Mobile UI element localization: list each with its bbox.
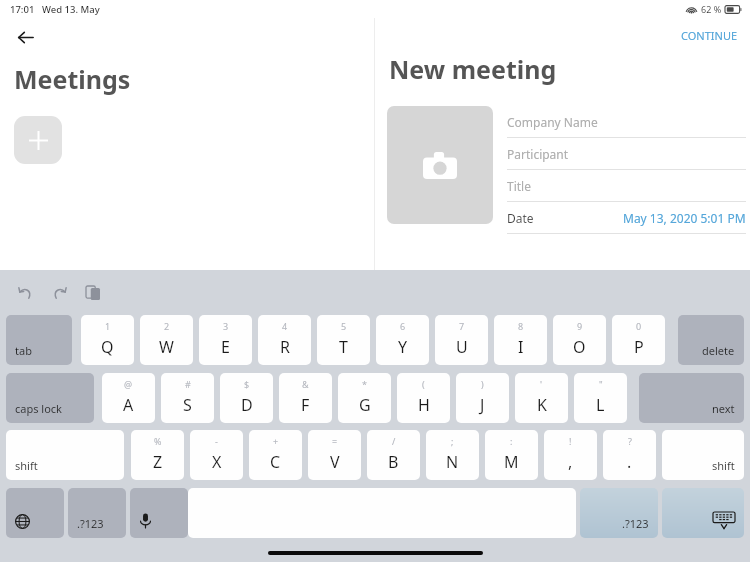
staticText: , xyxy=(568,451,573,473)
button[interactable]: ( xyxy=(397,373,450,423)
staticText: * xyxy=(362,378,367,390)
button[interactable]: $ xyxy=(220,373,273,423)
button[interactable]: 3 xyxy=(199,315,252,365)
staticText: F xyxy=(301,394,310,416)
button[interactable]: Change language xyxy=(6,488,64,538)
button[interactable]: 4 xyxy=(258,315,311,365)
button[interactable]: shift xyxy=(662,430,744,480)
staticText: + xyxy=(273,435,279,447)
button[interactable]: Voice input xyxy=(130,488,188,538)
staticText: Z xyxy=(153,451,163,473)
button[interactable]: " xyxy=(574,373,627,423)
staticText: shift xyxy=(712,458,735,473)
button[interactable]: Add meeting xyxy=(14,116,62,164)
button[interactable]: / xyxy=(367,430,420,480)
staticText: / xyxy=(392,435,396,447)
button[interactable]: Participant xyxy=(507,138,746,169)
button[interactable]: Title xyxy=(507,170,746,201)
button[interactable]: 5 xyxy=(317,315,370,365)
button[interactable]: Date xyxy=(507,202,746,233)
staticText: - xyxy=(215,435,218,447)
button[interactable]: 6 xyxy=(376,315,429,365)
staticText: next xyxy=(712,401,735,416)
button[interactable]: Back xyxy=(6,18,44,56)
button[interactable]: % xyxy=(131,430,184,480)
staticText: : xyxy=(510,435,513,447)
staticText: 3 xyxy=(223,320,229,332)
staticText: Q xyxy=(101,336,114,358)
button[interactable]: Add photo xyxy=(387,106,493,224)
staticText: . xyxy=(627,451,632,473)
staticText: 6 xyxy=(400,320,406,332)
staticText: V xyxy=(330,451,340,473)
staticText: W xyxy=(159,336,174,358)
button[interactable]: * xyxy=(338,373,391,423)
staticText: CONTINUE xyxy=(681,28,738,43)
staticText: ! xyxy=(569,435,572,447)
button[interactable]: & xyxy=(279,373,332,423)
staticText: 17:01 xyxy=(10,3,35,16)
staticText: ) xyxy=(481,378,484,390)
staticText: 9 xyxy=(577,320,583,332)
button[interactable]: Paste xyxy=(80,280,106,306)
staticText: S xyxy=(183,394,192,416)
button[interactable]: caps lock xyxy=(6,373,94,423)
button[interactable]: : xyxy=(485,430,538,480)
button[interactable]: delete xyxy=(678,315,744,365)
staticText: @ xyxy=(124,378,133,390)
button[interactable]: CONTINUE xyxy=(675,23,744,48)
button[interactable]: .?123 xyxy=(580,488,658,538)
staticText: T xyxy=(339,336,348,358)
staticText: ' xyxy=(540,378,543,390)
staticText: Date xyxy=(507,210,534,226)
button[interactable]: Company Name xyxy=(507,106,746,137)
button[interactable]: ; xyxy=(426,430,479,480)
staticText: # xyxy=(185,378,191,390)
button[interactable]: Hide keyboard xyxy=(662,488,744,538)
staticText: .?123 xyxy=(622,516,649,531)
staticText: ; xyxy=(451,435,454,447)
staticText: Title xyxy=(507,178,531,194)
button[interactable]: @ xyxy=(102,373,155,423)
button[interactable]: ? xyxy=(603,430,656,480)
button[interactable]: 9 xyxy=(553,315,606,365)
staticText: = xyxy=(332,435,338,447)
staticText: 5 xyxy=(341,320,347,332)
staticText: J xyxy=(480,394,485,416)
button[interactable]: = xyxy=(308,430,361,480)
staticText: D xyxy=(241,394,253,416)
button[interactable]: # xyxy=(161,373,214,423)
button[interactable]: 1 xyxy=(81,315,134,365)
staticText: " xyxy=(599,378,603,390)
staticText: May 13, 2020 5:01 PM xyxy=(623,210,746,226)
staticText: P xyxy=(634,336,644,358)
button[interactable]: tab xyxy=(6,315,72,365)
button[interactable]: Undo xyxy=(12,280,38,306)
staticText: X xyxy=(212,451,222,473)
staticText: Wed 13. May xyxy=(42,3,100,16)
staticText: .?123 xyxy=(77,516,104,531)
button[interactable]: ! xyxy=(544,430,597,480)
button[interactable]: ' xyxy=(515,373,568,423)
button[interactable]: next xyxy=(639,373,744,423)
staticText: E xyxy=(221,336,230,358)
button[interactable]: .?123 xyxy=(68,488,126,538)
button[interactable]: 8 xyxy=(494,315,547,365)
staticText: I xyxy=(518,336,524,358)
button[interactable]: ) xyxy=(456,373,509,423)
staticText: $ xyxy=(244,378,250,390)
button[interactable]: + xyxy=(249,430,302,480)
staticText: Company Name xyxy=(507,114,598,130)
button[interactable]: 0 xyxy=(612,315,665,365)
button[interactable]: 2 xyxy=(140,315,193,365)
button[interactable]: - xyxy=(190,430,243,480)
staticText: Y xyxy=(398,336,408,358)
button[interactable]: 7 xyxy=(435,315,488,365)
button[interactable]: shift xyxy=(6,430,124,480)
staticText: 62 % xyxy=(701,3,722,15)
staticText: caps lock xyxy=(15,401,62,416)
staticText: 7 xyxy=(459,320,465,332)
button[interactable]: Redo xyxy=(46,280,72,306)
staticText: 2 xyxy=(164,320,170,332)
